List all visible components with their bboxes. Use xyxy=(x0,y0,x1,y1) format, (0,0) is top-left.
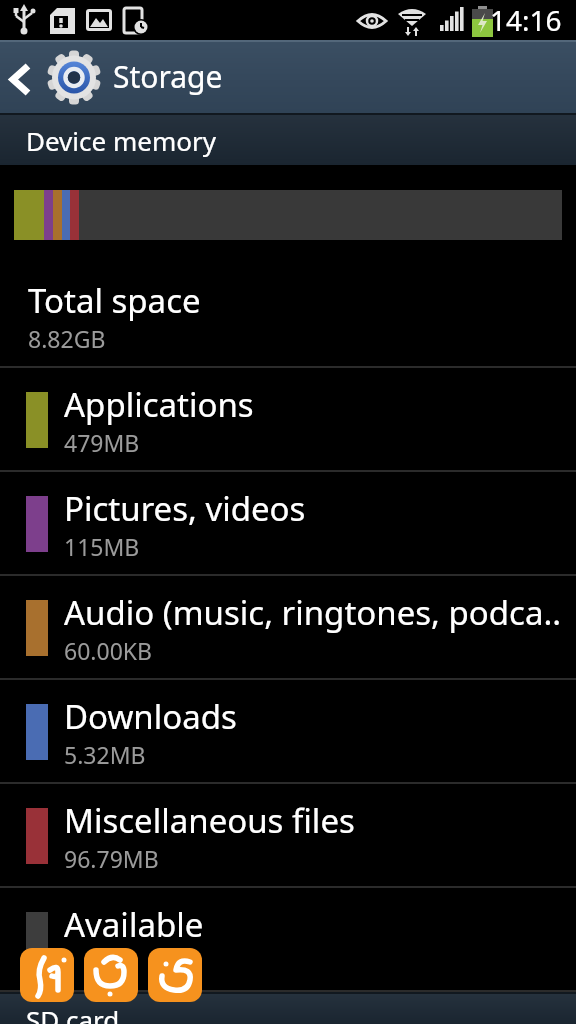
staticText: 14:16 xyxy=(490,1,562,39)
staticText: Audio (music, ringtones, podca.. xyxy=(64,590,562,635)
staticText: 60.00KB xyxy=(64,635,152,666)
staticText: Storage xyxy=(113,56,223,97)
staticText: SD card xyxy=(26,1002,120,1024)
button[interactable]: Total space xyxy=(0,264,576,368)
button[interactable]: Storage xyxy=(0,40,576,113)
button[interactable] xyxy=(148,948,202,1002)
staticText: 8.82GB xyxy=(28,323,106,354)
staticText: Miscellaneous files xyxy=(64,798,355,843)
button[interactable]: Downloads xyxy=(0,680,576,784)
staticText: 115MB xyxy=(64,531,140,562)
button[interactable]: Miscellaneous files xyxy=(0,784,576,888)
button[interactable] xyxy=(84,948,138,1002)
staticText: Applications xyxy=(64,382,254,427)
button[interactable]: Pictures, videos xyxy=(0,472,576,576)
staticText: 7.86GB xyxy=(64,947,142,978)
button[interactable] xyxy=(20,948,74,1002)
staticText: Device memory xyxy=(26,123,216,158)
button[interactable]: Audio (music, ringtones, podca.. xyxy=(0,576,576,680)
staticText: 479MB xyxy=(64,427,140,458)
button[interactable]: Applications xyxy=(0,368,576,472)
button[interactable]: Available xyxy=(0,888,576,992)
staticText: Downloads xyxy=(64,694,237,739)
staticText: Available xyxy=(64,902,204,947)
staticText: 5.32MB xyxy=(64,739,146,770)
staticText: Total space xyxy=(28,278,201,323)
staticText: Pictures, videos xyxy=(64,486,306,531)
staticText: 96.79MB xyxy=(64,843,159,874)
